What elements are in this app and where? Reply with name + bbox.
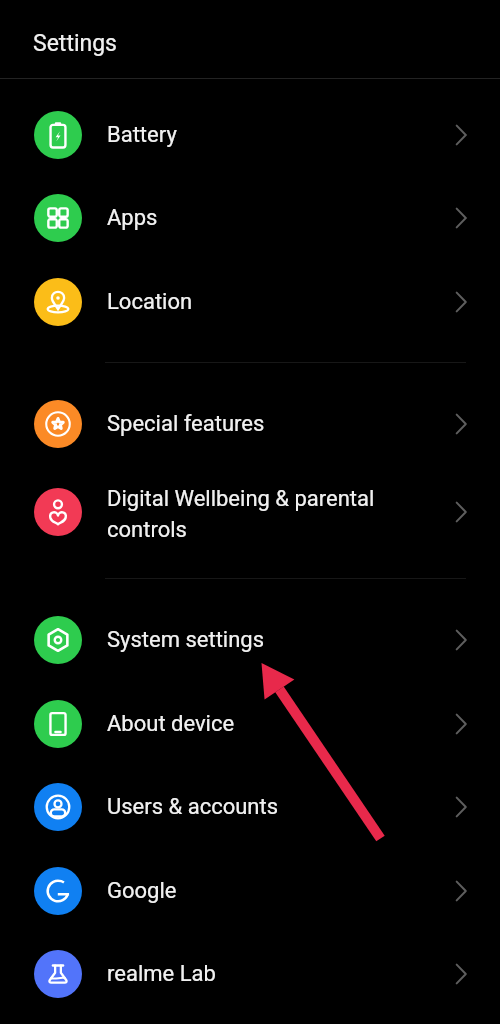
button[interactable]: System settings (0, 598, 500, 681)
other: Open Digital Wellbeing & parental contro… (449, 500, 473, 524)
button[interactable]: realme Lab (0, 932, 500, 1015)
other: Open About device (449, 712, 473, 736)
other: Open Google (449, 879, 473, 903)
button[interactable]: Apps (0, 176, 500, 259)
other: Open Apps (449, 206, 473, 230)
other: Open Battery (449, 123, 473, 147)
other: Open Users & accounts (449, 795, 473, 819)
staticText: About device (107, 711, 449, 737)
staticText: Google (107, 878, 449, 904)
staticText: Location (107, 289, 449, 315)
other: Users & accounts (34, 783, 82, 831)
button[interactable]: Users & accounts (0, 765, 500, 848)
other: Digital Wellbeing & parental controls (34, 488, 82, 536)
staticText: Apps (107, 205, 449, 231)
other: realme Lab (34, 950, 82, 998)
staticText: Users & accounts (107, 794, 449, 820)
other: About device (34, 700, 82, 748)
staticText: Special features (107, 411, 449, 437)
other: Open realme Lab (449, 962, 473, 986)
button[interactable]: Special features (0, 382, 500, 465)
button[interactable]: About device (0, 682, 500, 765)
other: Apps (34, 194, 82, 242)
button[interactable]: Google (0, 849, 500, 932)
other: Location (34, 278, 82, 326)
button[interactable]: Location (0, 260, 500, 343)
staticText: Battery (107, 122, 449, 148)
other: Open System settings (449, 628, 473, 652)
other: Open Special features (449, 412, 473, 436)
other: Open Location (449, 290, 473, 314)
other: Google (34, 867, 82, 915)
staticText: realme Lab (107, 961, 449, 987)
button[interactable]: Battery (0, 93, 500, 176)
staticText: Digital Wellbeing & parental controls (107, 486, 449, 543)
other: Battery (34, 111, 82, 159)
staticText: System settings (107, 627, 449, 653)
other: System settings (34, 616, 82, 664)
other: Special features (34, 400, 82, 448)
button[interactable]: Digital Wellbeing & parental controls (0, 470, 500, 553)
staticText: Settings (33, 30, 117, 57)
